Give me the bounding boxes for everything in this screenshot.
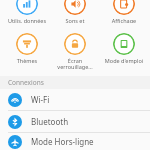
button[interactable]: Mode d'emploi: [100, 33, 148, 64]
button[interactable]: Affichage: [100, 0, 148, 23]
button[interactable]: Thèmes: [3, 33, 51, 64]
staticText: Bluetooth: [31, 116, 69, 127]
staticText: Écran verrouillage...: [51, 57, 99, 71]
button[interactable]: Sons et notifications: [51, 0, 99, 23]
staticText: Utilis. données: [3, 17, 51, 23]
staticText: Mode Hors-ligne: [31, 136, 94, 147]
button[interactable]: Écran verrouillage...: [51, 33, 99, 71]
staticText: Connexions: [8, 78, 44, 87]
staticText: Mode d'emploi: [100, 57, 148, 64]
staticText: Sons et notifications: [51, 17, 99, 23]
staticText: Thèmes: [3, 57, 51, 64]
button[interactable]: Wi-Fi: [0, 89, 150, 110]
button[interactable]: Bluetooth: [0, 111, 150, 132]
button[interactable]: Mode Hors-ligne: [0, 133, 150, 150]
staticText: Affichage: [100, 17, 148, 23]
staticText: Wi-Fi: [31, 94, 50, 105]
button[interactable]: Utilis. données: [3, 0, 51, 23]
